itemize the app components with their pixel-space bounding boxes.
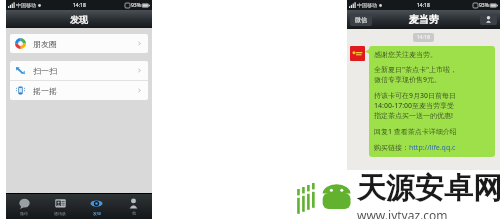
staticText: 14:18 (417, 2, 430, 9)
staticText: www.jytyaz.com (357, 207, 448, 219)
button[interactable]: 朋友圈 (10, 34, 148, 53)
staticText: 93% (131, 2, 141, 9)
staticText: 14:18 (417, 34, 430, 41)
button[interactable]: 通讯录 (42, 193, 78, 219)
button[interactable]: Contact info (480, 14, 497, 25)
button[interactable]: 摇一摇 (10, 81, 148, 100)
staticText: 扫一扫 (33, 66, 57, 76)
staticText: 购买链接： (374, 143, 409, 152)
button[interactable]: 微信 (350, 14, 372, 26)
staticText: 微信专享现价售9元。 (374, 75, 442, 85)
staticText: 摇一摇 (33, 86, 57, 96)
staticText: 持该卡可在9月30日前每日 (374, 91, 457, 101)
staticText: 全新夏日"茶点卡"上市啦， (374, 65, 458, 75)
button[interactable]: 扫一扫 (10, 61, 148, 80)
button[interactable]: 我 (115, 193, 152, 219)
staticText: 我 (132, 211, 136, 216)
staticText: 中国移动 (16, 2, 36, 8)
button[interactable]: 感谢您关注麦当劳。 (369, 46, 495, 157)
staticText: 回复1 查看茶点卡详细介绍 (374, 127, 457, 137)
staticText: 微信 (355, 16, 367, 24)
staticText: 14:18 (73, 2, 86, 9)
button[interactable]: 发现 (78, 193, 115, 219)
button[interactable]: 微信 (6, 193, 42, 219)
staticText: 14:00-17:00至麦当劳享受 (374, 101, 455, 111)
staticText: http://life.qq.c (409, 143, 456, 153)
staticText: 中国移动 (357, 2, 377, 8)
staticText: 感谢您关注麦当劳。 (374, 50, 437, 59)
staticText: 93% (479, 2, 489, 9)
staticText: 通讯录 (54, 211, 66, 216)
staticText: 发现 (70, 14, 88, 25)
staticText: 发现 (93, 211, 101, 216)
staticText: 指定茶点买一送一的优惠! (374, 111, 453, 121)
staticText: 朋友圈 (33, 39, 57, 49)
staticText: 天源安卓网 (357, 170, 500, 207)
staticText: 麦当劳 (409, 13, 439, 26)
staticText: 微信 (20, 211, 28, 216)
button[interactable]: McDonald's avatar (350, 46, 365, 61)
